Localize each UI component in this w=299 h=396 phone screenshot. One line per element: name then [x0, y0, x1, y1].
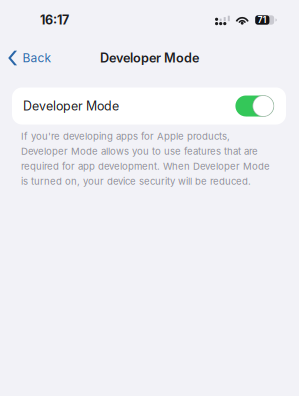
staticText: 71: [258, 15, 267, 25]
staticText: If you're developing apps for Apple prod…: [21, 130, 270, 187]
button[interactable]: Back: [0, 46, 61, 70]
staticText: Developer Mode: [100, 50, 199, 66]
staticText: Developer Mode: [23, 98, 119, 113]
button[interactable]: Developer Mode: [12, 87, 286, 124]
staticText: 16:17: [40, 12, 69, 28]
staticText: Back: [22, 51, 51, 65]
